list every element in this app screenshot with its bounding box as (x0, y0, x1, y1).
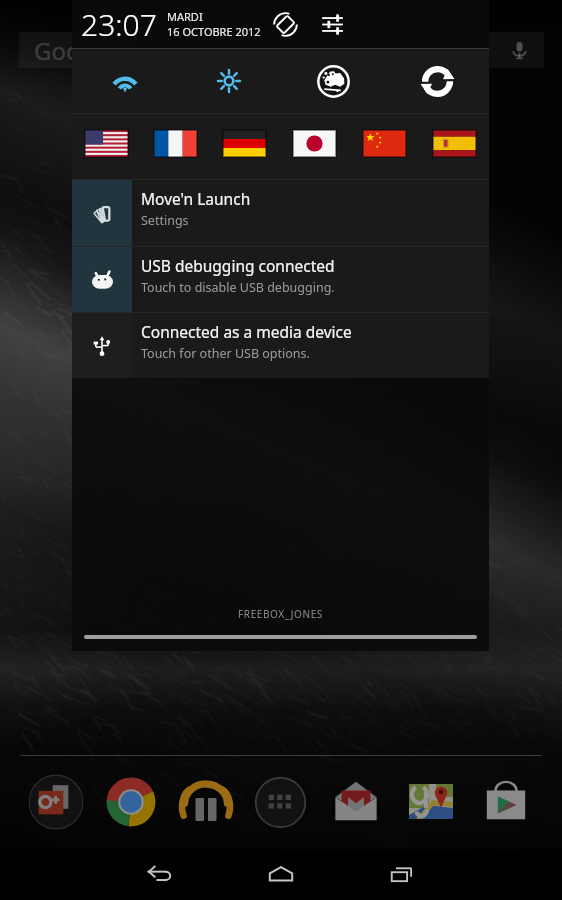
button[interactable]: Chrome (93, 766, 168, 838)
staticText: Settings (141, 212, 189, 229)
staticText: FREEBOX_JONES (72, 607, 489, 621)
staticText: 16 OCTOBRE 2012 (167, 24, 261, 39)
button[interactable]: All apps (243, 766, 318, 838)
button[interactable]: Connected as a media device (72, 313, 489, 378)
button[interactable]: Home (251, 849, 311, 900)
button[interactable]: Wi-Fi (72, 49, 177, 113)
button[interactable]: Rotation lock (265, 4, 305, 44)
button[interactable]: Maps (393, 766, 468, 838)
button[interactable]: USB debugging connected (72, 247, 489, 312)
staticText: Google (34, 34, 115, 67)
button[interactable]: Google (19, 32, 544, 68)
button[interactable]: China (349, 114, 419, 179)
staticText: 23:07 (81, 4, 157, 45)
button[interactable]: Play Music (168, 766, 243, 838)
button[interactable]: Settings (312, 4, 352, 44)
button[interactable]: Language (281, 49, 385, 113)
button[interactable]: Japan (279, 114, 349, 179)
button[interactable]: Spain (419, 114, 489, 179)
staticText: Touch for other USB options. (141, 345, 310, 362)
button[interactable]: Brightness (177, 49, 281, 113)
button[interactable]: Google Plus (19, 766, 93, 838)
button[interactable]: Germany (210, 114, 279, 179)
staticText: Move'n Launch (141, 188, 251, 209)
button[interactable]: Back (130, 849, 190, 900)
button[interactable]: United States (72, 114, 141, 179)
staticText: Connected as a media device (141, 321, 352, 342)
staticText: Touch to disable USB debugging. (141, 279, 335, 296)
button[interactable]: Recents (372, 849, 432, 900)
button[interactable]: France (141, 114, 210, 179)
staticText: USB debugging connected (141, 255, 335, 276)
button[interactable]: Play Store (468, 766, 543, 838)
button[interactable]: Move'n Launch (72, 180, 489, 246)
button[interactable]: Sync (385, 49, 489, 113)
staticText: MARDI (167, 9, 203, 24)
button[interactable]: Gmail (318, 766, 393, 838)
